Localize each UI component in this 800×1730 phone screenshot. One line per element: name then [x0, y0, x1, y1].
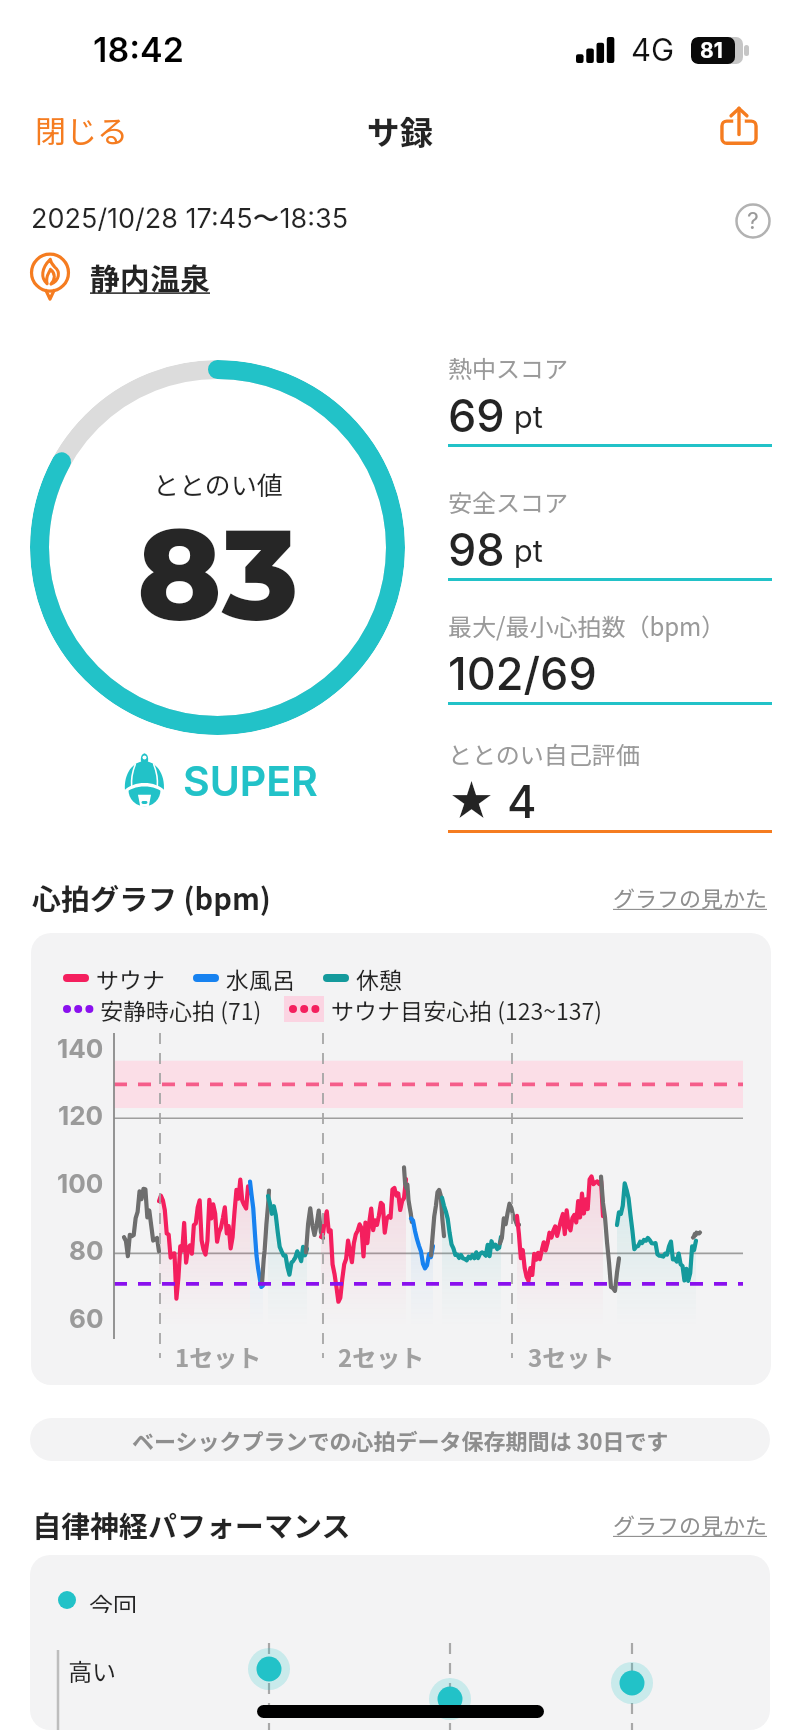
staticText: 60 [69, 1303, 104, 1334]
staticText: 102/69 [448, 646, 597, 698]
staticText: 高い [68, 1653, 116, 1688]
staticText: 3セット [528, 1339, 615, 1374]
staticText: サウナ [96, 962, 165, 994]
button[interactable]: グラフの見かた [613, 1508, 768, 1540]
staticText: サ録 [367, 107, 433, 155]
staticText: 休憩 [356, 962, 402, 994]
button[interactable]: Share [715, 100, 763, 148]
staticText: 80 [69, 1235, 104, 1266]
button[interactable]: サウナ [31, 933, 771, 1385]
staticText: 心拍グラフ (bpm) [32, 876, 271, 918]
staticText: pt [505, 532, 543, 570]
staticText: 140 [57, 1033, 104, 1064]
staticText: 83 [137, 496, 299, 651]
button[interactable]: 静内温泉 [26, 252, 210, 300]
staticText: 100 [57, 1168, 104, 1199]
staticText: 熱中スコア [448, 350, 568, 385]
button[interactable]: SUPER [122, 752, 318, 810]
staticText: 18:42 [93, 29, 184, 70]
button[interactable]: 最大/最小心拍数（bpm） [448, 608, 772, 705]
button[interactable]: ベーシックプランでの心拍データ保存期間は 30日です [30, 1418, 770, 1461]
staticText: 水風呂 [226, 962, 295, 994]
button[interactable]: 今回 [30, 1555, 770, 1730]
staticText: グラフの見かた [613, 881, 768, 913]
staticText: 120 [58, 1100, 104, 1131]
button[interactable]: 安全スコア [448, 484, 772, 581]
button[interactable]: 熱中スコア [448, 350, 772, 447]
staticText: 静内温泉 [90, 255, 210, 298]
staticText: ととのい値 [153, 465, 283, 503]
staticText: 安全スコア [448, 484, 568, 519]
button[interactable]: Help [735, 203, 771, 239]
staticText: ととのい自己評価 [448, 736, 640, 771]
staticText: ベーシックプランでの心拍データ保存期間は 30日です [132, 1424, 669, 1456]
staticText: ★ 4 [448, 774, 537, 826]
button[interactable]: ととのい値 [30, 360, 405, 735]
staticText: 2025/10/28 17:45〜18:35 [31, 202, 349, 236]
staticText: 最大/最小心拍数（bpm） [448, 608, 726, 643]
staticText: ? [747, 207, 759, 235]
staticText: 閉じる [35, 107, 128, 152]
staticText: 69 [448, 388, 505, 440]
staticText: 98 [448, 522, 505, 574]
staticText: 1セット [175, 1339, 262, 1374]
staticText: SUPER [183, 756, 318, 806]
staticText: サウナ目安心拍 (123~137) [331, 993, 603, 1025]
staticText: 安静時心拍 (71) [100, 993, 262, 1025]
staticText: 81 [700, 38, 723, 63]
staticText: 今回 [89, 1587, 137, 1613]
button[interactable]: 閉じる [20, 100, 143, 159]
staticText: 2セット [338, 1339, 425, 1374]
staticText: pt [505, 398, 543, 436]
staticText: 4G [631, 31, 675, 69]
staticText: グラフの見かた [613, 1508, 768, 1540]
button[interactable]: ととのい自己評価 [448, 736, 772, 833]
staticText: 自律神経パフォーマンス [32, 1503, 351, 1545]
button[interactable]: グラフの見かた [613, 881, 768, 913]
